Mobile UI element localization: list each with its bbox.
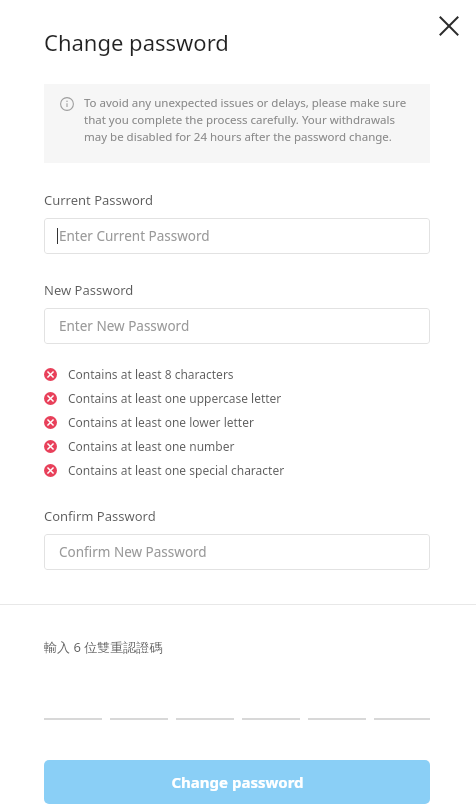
staticText: Contains at least one special character bbox=[68, 462, 285, 478]
staticText: Confirm Password bbox=[44, 507, 156, 525]
staticText: Contains at least one number bbox=[68, 438, 235, 454]
button[interactable]: Confirm New Password bbox=[44, 534, 430, 570]
staticText: Contains at least one lower letter bbox=[68, 414, 254, 430]
staticText: Change password bbox=[44, 27, 229, 57]
staticText: Contains at least 8 characters bbox=[68, 366, 234, 382]
staticText: 輸入 6 位雙重認證碼 bbox=[44, 638, 163, 656]
staticText: New Password bbox=[44, 281, 134, 299]
staticText: Confirm New Password bbox=[59, 543, 207, 561]
staticText: Change password bbox=[171, 772, 304, 792]
button[interactable]: Enter New Password bbox=[44, 308, 430, 344]
button[interactable]: Change password bbox=[44, 760, 430, 804]
button[interactable]: Enter Current Password bbox=[44, 218, 430, 254]
button[interactable]: Close bbox=[430, 7, 468, 45]
staticText: To avoid any unexpected issues or delays… bbox=[84, 95, 416, 144]
staticText: Enter Current Password bbox=[59, 227, 210, 245]
staticText: Current Password bbox=[44, 191, 153, 209]
staticText: Enter New Password bbox=[59, 317, 190, 335]
staticText: Contains at least one uppercase letter bbox=[68, 390, 282, 406]
